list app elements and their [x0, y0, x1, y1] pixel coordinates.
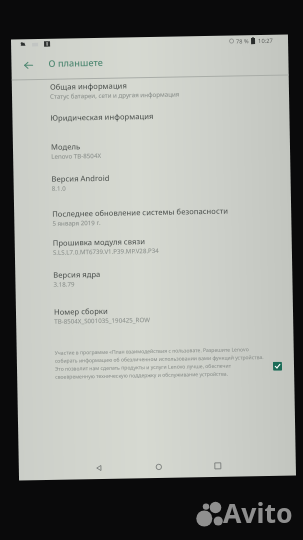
button[interactable]: Home	[152, 460, 166, 474]
button[interactable]: Back	[18, 55, 39, 75]
staticText: О планшете	[48, 56, 103, 70]
staticText: 5 января 2019 г.	[52, 218, 101, 227]
staticText: Модель	[51, 141, 81, 152]
staticText: TB-8504X_S001035_190425_ROW	[54, 315, 150, 325]
staticText: Общая информация	[50, 80, 127, 92]
staticText: Прошивка модуля связи	[53, 236, 146, 248]
button[interactable]: Back	[92, 461, 106, 475]
staticText: Lenovo TB-8504X	[51, 151, 101, 160]
button[interactable]: Участие в программе «План взаимодействия…	[55, 345, 300, 381]
staticText: Последнее обновление системы безопасност…	[52, 206, 228, 219]
staticText: Номер сборки	[54, 306, 108, 317]
button[interactable]: Recent apps	[211, 459, 225, 473]
staticText: Статус батареи, сети и другая информация	[50, 89, 180, 100]
staticText: S.LS.L7.0.MT6739.V1.P39.MP.V28.P34	[53, 246, 159, 256]
staticText: 10:27	[258, 37, 273, 45]
staticText: 3.18.79	[53, 279, 75, 288]
staticText: Avito	[223, 495, 293, 531]
staticText: 8.1.0	[52, 184, 66, 192]
staticText: Версия ядра	[53, 269, 101, 280]
staticText: Юридическая информация	[50, 111, 154, 123]
staticText: Версия Android	[51, 173, 110, 184]
staticText: 78 %	[236, 37, 249, 45]
staticText: Участие в программе «План взаимодействия…	[55, 346, 268, 381]
